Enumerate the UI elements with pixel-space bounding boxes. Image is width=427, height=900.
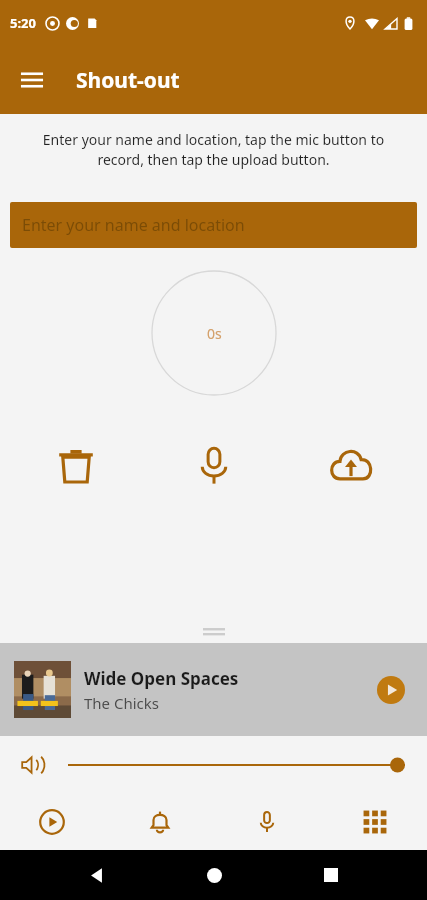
staticText: Enter your name and location [22, 214, 245, 236]
staticText: Enter your name and location, tap the mi… [22, 130, 405, 170]
staticText: Wide Open Spaces [84, 667, 239, 690]
button[interactable]: Enter your name and location [10, 202, 417, 248]
button[interactable]: Wide Open Spaces [0, 643, 427, 736]
button[interactable]: Volume [14, 746, 52, 784]
staticText: Shout-out [76, 66, 180, 95]
button[interactable]: Expand player [0, 619, 427, 643]
staticText: 0s [207, 324, 222, 343]
staticText: 5:20 [10, 14, 36, 32]
button[interactable]: Play [369, 668, 413, 712]
button[interactable]: Home [192, 853, 236, 897]
button[interactable]: Notifications [134, 796, 186, 848]
button[interactable]: Upload recording [321, 436, 381, 496]
button[interactable]: Play [26, 796, 78, 848]
staticText: The Chicks [84, 693, 159, 713]
button[interactable]: Recent apps [309, 853, 353, 897]
button[interactable]: Microphone [241, 796, 293, 848]
button[interactable]: Open navigation menu [8, 56, 56, 104]
button[interactable]: Delete recording [46, 436, 106, 496]
button[interactable]: Record with microphone [184, 436, 244, 496]
button[interactable]: Apps [349, 796, 401, 848]
button[interactable]: Back [74, 853, 118, 897]
